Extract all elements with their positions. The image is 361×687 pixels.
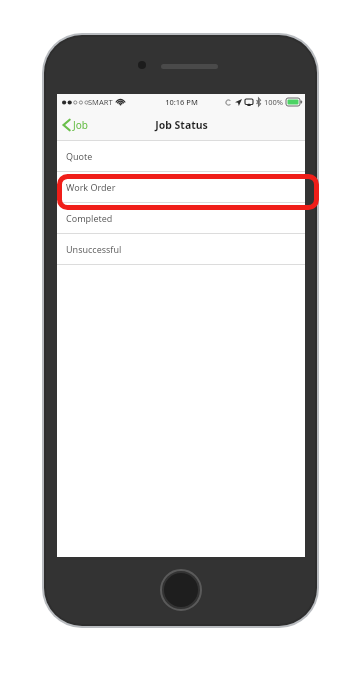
staticText: Job Status <box>155 118 208 132</box>
button[interactable]: Back <box>57 114 94 136</box>
button[interactable]: Unsuccessful <box>57 234 305 264</box>
staticText: 100% <box>264 97 284 107</box>
staticText: Unsuccessful <box>66 243 122 255</box>
button[interactable]: Work Order <box>57 172 305 202</box>
staticText: Job <box>73 118 88 132</box>
other: Back <box>63 119 70 131</box>
staticText: Quote <box>66 150 93 162</box>
button[interactable]: Quote <box>57 141 305 171</box>
staticText: Completed <box>66 212 113 224</box>
staticText: Work Order <box>66 181 116 193</box>
button[interactable]: Completed <box>57 203 305 233</box>
staticText: SMART <box>88 97 113 107</box>
staticText: 10:16 PM <box>165 97 198 107</box>
